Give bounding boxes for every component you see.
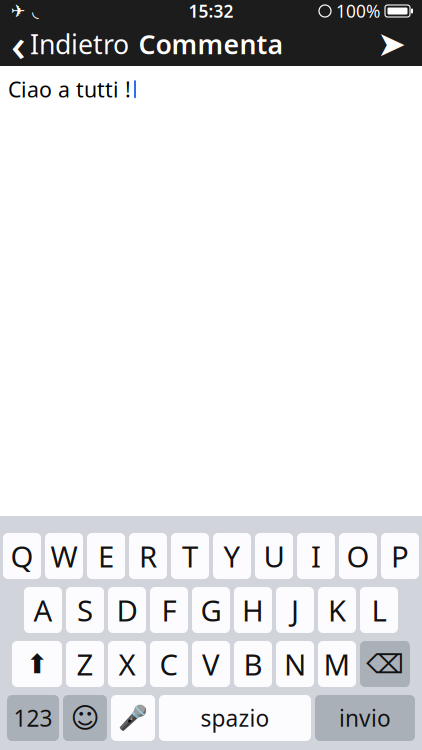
button[interactable]: Dettatura	[111, 695, 155, 741]
staticText: invio	[339, 703, 391, 733]
staticText: X	[118, 644, 135, 683]
button[interactable]: C	[150, 641, 188, 687]
staticText: ⌫	[366, 649, 404, 679]
button[interactable]: A	[24, 587, 62, 633]
staticText: B	[243, 644, 262, 683]
button[interactable]: Y	[213, 533, 251, 579]
staticText: 100%	[336, 0, 380, 22]
button[interactable]: N	[276, 641, 314, 687]
staticText: J	[291, 590, 299, 629]
button[interactable]: W	[45, 533, 83, 579]
button[interactable]: B	[234, 641, 272, 687]
staticText: E	[98, 536, 114, 575]
staticText: A	[33, 590, 52, 629]
staticText: Y	[223, 536, 240, 575]
staticText: V	[202, 644, 220, 683]
button[interactable]: Z	[66, 641, 104, 687]
button[interactable]: Invia	[365, 22, 422, 66]
button[interactable]: Emoji	[63, 695, 107, 741]
button[interactable]: Maiuscole	[12, 641, 62, 687]
staticText: ⬆	[26, 649, 48, 679]
staticText: 🎤	[118, 704, 148, 732]
staticText: T	[182, 536, 198, 575]
staticText: ✈	[11, 1, 26, 21]
button[interactable]: I	[297, 533, 335, 579]
staticText: L	[371, 590, 386, 629]
staticText: Ciao a tutti !	[8, 75, 131, 103]
staticText: U	[263, 536, 284, 575]
button[interactable]: J	[276, 587, 314, 633]
staticText: 15:32	[188, 0, 233, 22]
staticText: G	[200, 590, 221, 629]
staticText: N	[284, 644, 306, 683]
button[interactable]: K	[318, 587, 356, 633]
button[interactable]: X	[108, 641, 146, 687]
staticText: ◟	[32, 1, 39, 21]
button[interactable]: E	[87, 533, 125, 579]
button[interactable]: G	[192, 587, 230, 633]
staticText: K	[328, 590, 346, 629]
button[interactable]: V	[192, 641, 230, 687]
button[interactable]: L	[360, 587, 398, 633]
staticText: ‹	[11, 14, 26, 74]
button[interactable]: invio	[315, 695, 415, 741]
button[interactable]: Q	[3, 533, 41, 579]
staticText: H	[242, 590, 264, 629]
staticText: W	[50, 536, 77, 575]
button[interactable]: S	[66, 587, 104, 633]
button[interactable]: T	[171, 533, 209, 579]
button[interactable]: U	[255, 533, 293, 579]
staticText: Commenta	[138, 26, 283, 62]
button[interactable]: ‹	[0, 22, 137, 66]
button[interactable]: O	[339, 533, 377, 579]
button[interactable]: Cancella	[360, 641, 410, 687]
staticText: Z	[76, 644, 93, 683]
button[interactable]: F	[150, 587, 188, 633]
staticText: S	[77, 590, 93, 629]
button[interactable]: M	[318, 641, 356, 687]
button[interactable]: spazio	[159, 695, 311, 741]
staticText: R	[139, 536, 157, 575]
staticText: I	[311, 536, 321, 575]
button[interactable]: D	[108, 587, 146, 633]
button[interactable]: P	[381, 533, 419, 579]
button[interactable]: H	[234, 587, 272, 633]
button[interactable]: 123	[7, 695, 59, 741]
staticText: D	[116, 590, 137, 629]
staticText: P	[391, 536, 409, 575]
staticText: Indietro	[30, 26, 129, 62]
staticText: Q	[10, 536, 33, 575]
staticText: spazio	[200, 703, 269, 733]
staticText: O	[346, 536, 369, 575]
button[interactable]: R	[129, 533, 167, 579]
staticText: F	[161, 590, 176, 629]
staticText: ☺	[70, 702, 99, 734]
staticText: ➤	[377, 24, 406, 64]
staticText: M	[323, 644, 350, 683]
staticText: C	[159, 644, 178, 683]
staticText: 123	[13, 703, 52, 733]
